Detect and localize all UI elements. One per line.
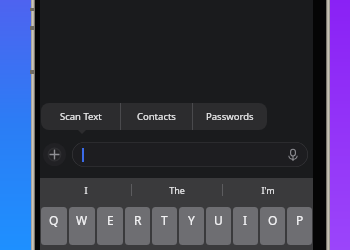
staticText: I — [243, 212, 248, 228]
staticText: The — [169, 184, 185, 196]
button[interactable]: W — [69, 207, 95, 245]
button[interactable]: Contacts — [121, 103, 192, 130]
button[interactable]: The — [132, 178, 222, 202]
staticText: T — [161, 212, 168, 228]
button[interactable]: R — [125, 207, 150, 245]
button[interactable]: Y — [179, 207, 204, 245]
staticText: O — [268, 212, 278, 228]
staticText: E — [107, 212, 114, 228]
staticText: Contacts — [137, 110, 176, 123]
button[interactable]: U — [206, 207, 231, 245]
staticText: Scan Text — [60, 110, 102, 123]
button[interactable]: I — [40, 178, 131, 202]
staticText: Q — [49, 212, 59, 228]
button[interactable]: P — [287, 207, 312, 245]
button[interactable]: Passwords — [193, 103, 267, 130]
button[interactable]: T — [152, 207, 177, 245]
staticText: W — [76, 212, 88, 228]
staticText: I'm — [261, 184, 275, 196]
button[interactable]: I — [233, 207, 258, 245]
button[interactable]: Add attachment — [43, 143, 66, 166]
staticText: U — [214, 212, 223, 228]
staticText: P — [296, 212, 304, 228]
staticText: R — [134, 212, 142, 228]
staticText: Passwords — [206, 110, 254, 123]
button[interactable]: I'm — [223, 178, 313, 202]
button[interactable]: E — [97, 207, 123, 245]
staticText: Y — [188, 212, 195, 228]
button[interactable]: Dictate — [285, 147, 301, 163]
button[interactable]: O — [260, 207, 285, 245]
button[interactable]: Dictate — [72, 142, 308, 167]
button[interactable]: Scan Text — [41, 103, 120, 130]
button[interactable]: Q — [41, 207, 67, 245]
staticText: I — [84, 184, 88, 196]
